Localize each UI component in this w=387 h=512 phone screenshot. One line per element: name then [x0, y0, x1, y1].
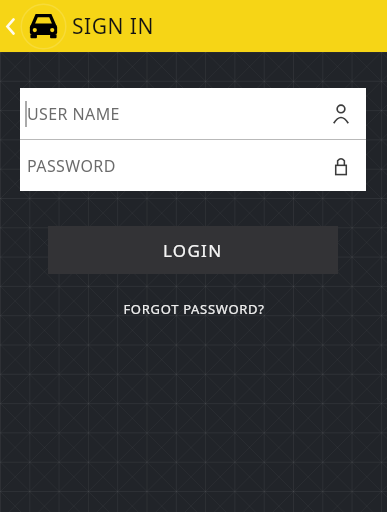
staticText: FORGOT PASSWORD? — [123, 300, 265, 318]
staticText: LOGIN — [163, 239, 223, 262]
button[interactable]: USER NAME — [20, 88, 366, 139]
button[interactable]: Back — [0, 0, 20, 52]
other: App logo — [20, 3, 67, 50]
staticText: SIGN IN — [72, 12, 154, 41]
button[interactable]: FORGOT PASSWORD? — [113, 296, 275, 322]
staticText: USER NAME — [27, 103, 120, 125]
button[interactable]: LOGIN — [48, 226, 338, 274]
button[interactable]: PASSWORD — [20, 140, 366, 191]
staticText: PASSWORD — [27, 155, 116, 177]
